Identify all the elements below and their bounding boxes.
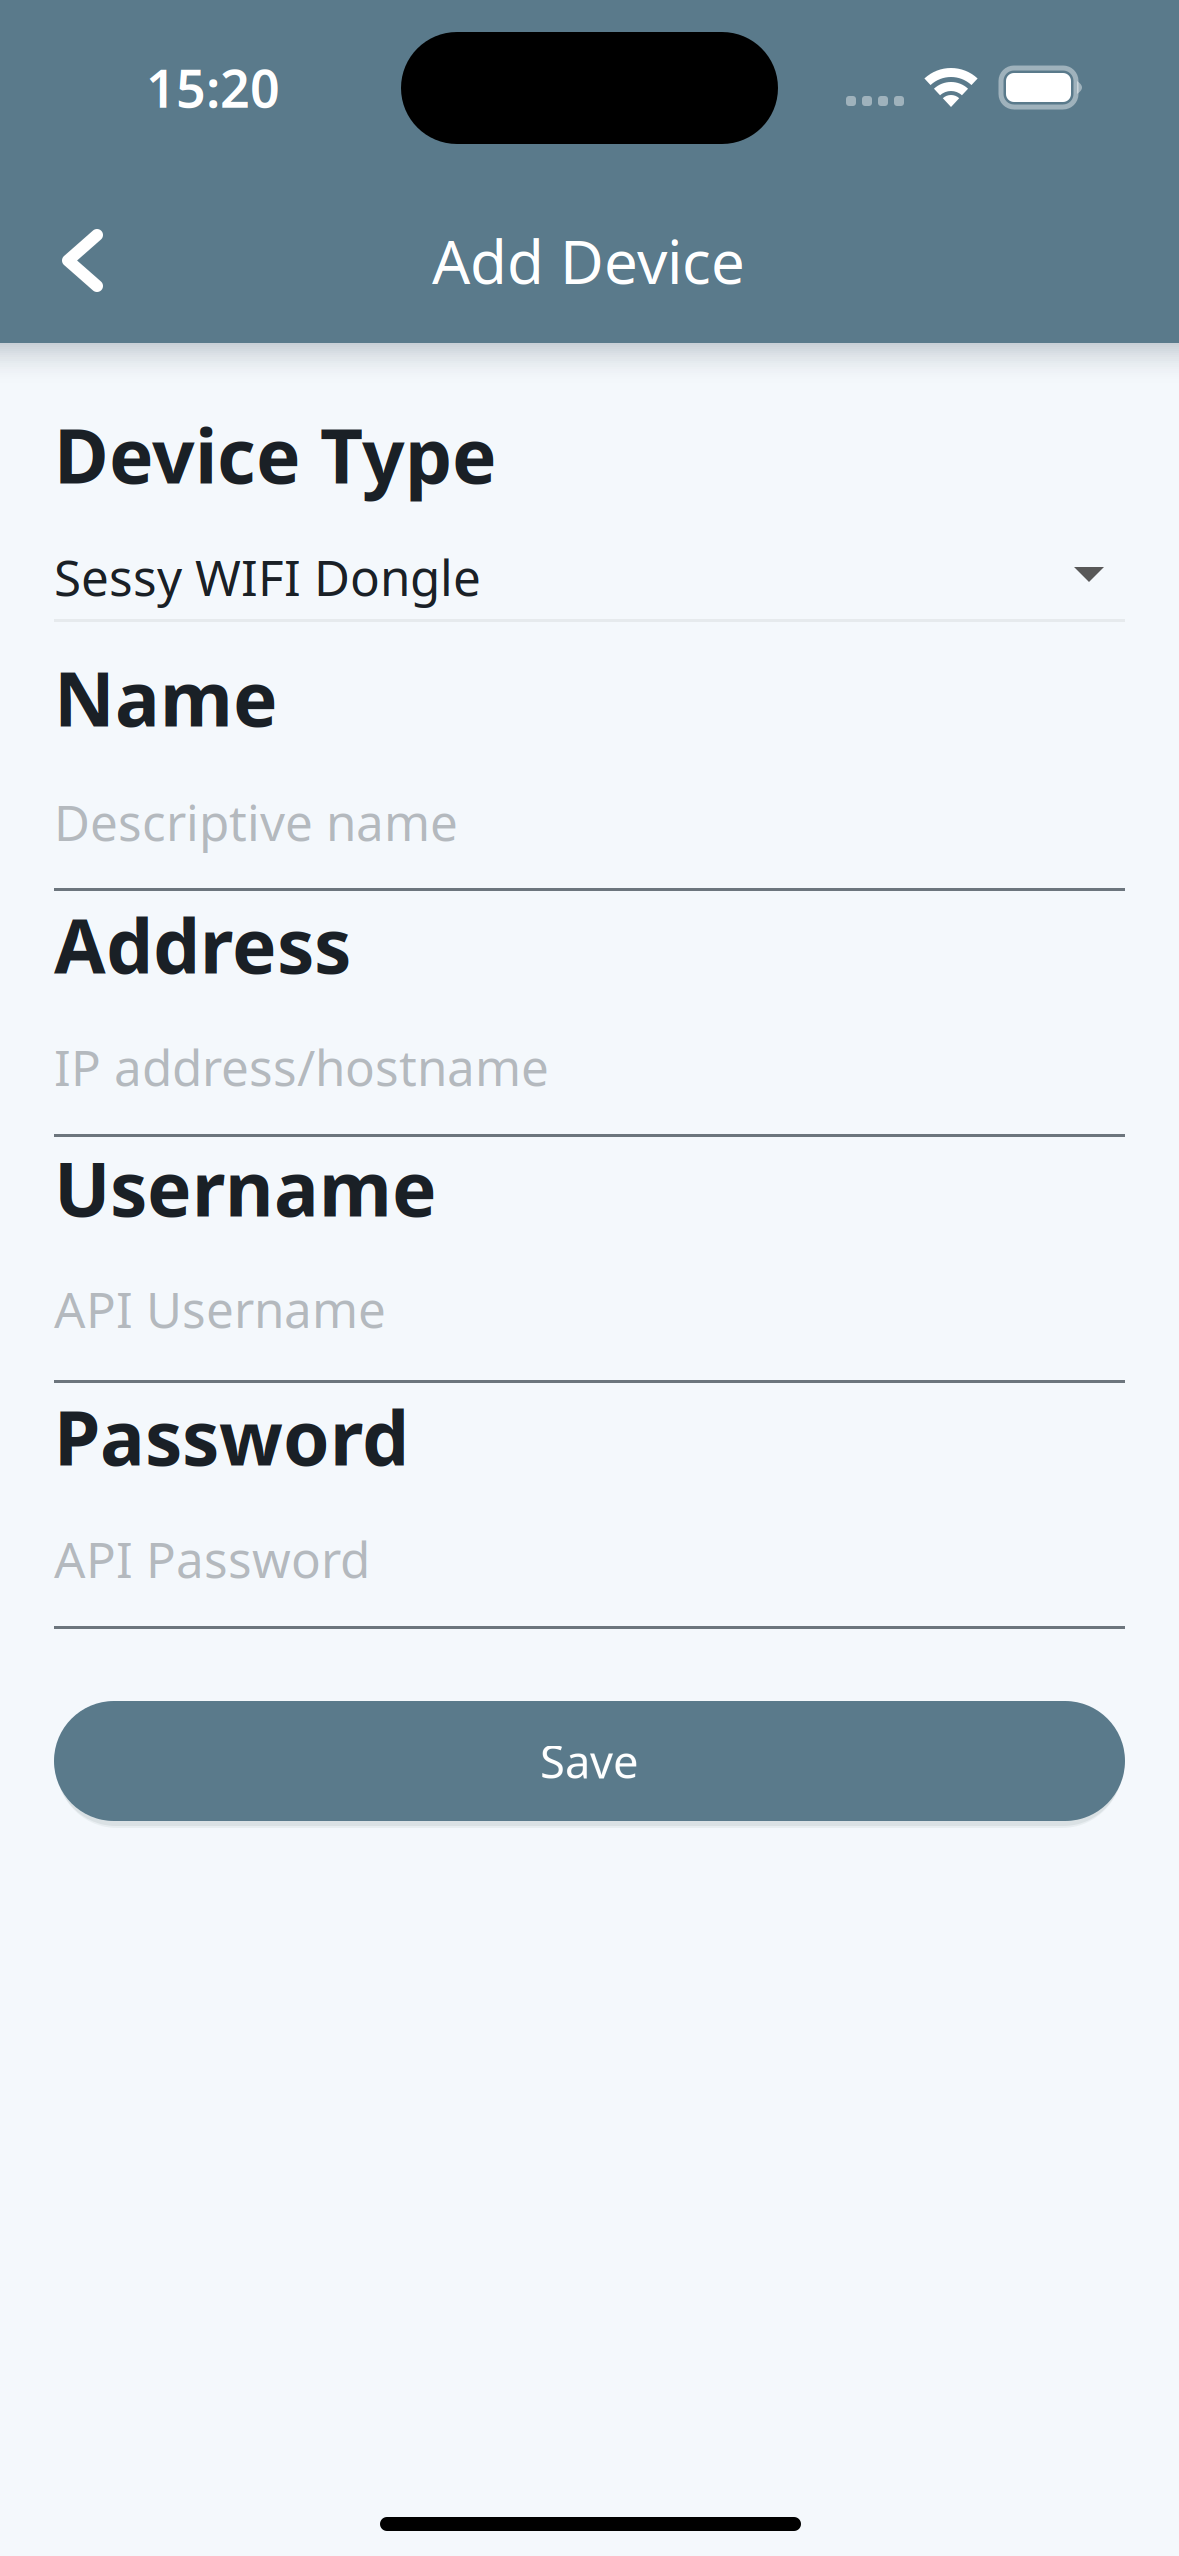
staticText: Name: [54, 648, 278, 747]
button[interactable]: IP address/hostname: [54, 1016, 1125, 1137]
staticText: Sessy WIFI Dongle: [54, 544, 481, 609]
staticText: Address: [54, 895, 351, 994]
staticText: API Username: [54, 1276, 386, 1341]
button[interactable]: Sessy WIFI Dongle: [54, 526, 1125, 622]
staticText: IP address/hostname: [54, 1034, 549, 1099]
staticText: Descriptive name: [54, 789, 458, 854]
staticText: Device Type: [54, 405, 497, 504]
staticText: Username: [54, 1138, 437, 1237]
button[interactable]: Descriptive name: [54, 771, 1125, 891]
staticText: Password: [54, 1387, 409, 1486]
button[interactable]: API Password: [54, 1508, 1125, 1629]
button[interactable]: Back: [16, 195, 148, 327]
button[interactable]: API Username: [54, 1258, 1125, 1383]
staticText: API Password: [54, 1526, 370, 1591]
staticText: 15:20: [146, 53, 280, 122]
staticText: Save: [540, 1731, 639, 1791]
button[interactable]: Save: [54, 1701, 1125, 1821]
staticText: Add Device: [432, 221, 745, 301]
